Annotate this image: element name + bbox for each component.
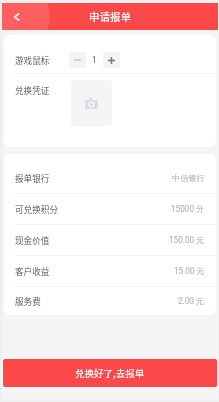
staticText: 150.00 元 [169,235,205,245]
button[interactable]: Decrease quantity [69,52,86,68]
button[interactable]: Increase quantity [103,52,120,68]
staticText: 兑换好了,去报单 [75,366,145,380]
staticText: 服务费 [15,295,41,307]
staticText: 可兑换积分 [15,203,58,215]
staticText: 15.00 元 [174,266,205,276]
staticText: 1 [92,55,97,65]
staticText: 现金价值 [15,234,50,246]
staticText: 兑换凭证 [15,84,50,96]
staticText: 报单银行 [15,172,50,184]
staticText: 2.00 元 [178,296,205,306]
staticText: 申请报单 [89,9,131,24]
staticText: 中信银行 [172,173,205,183]
button[interactable]: Upload voucher photo [71,80,112,126]
button[interactable]: 兑换好了,去报单 [3,359,217,387]
staticText: 游戏鼠标 [15,54,50,66]
staticText: 15000 分 [171,204,205,214]
staticText: 客户收益 [15,265,50,277]
button[interactable]: Back [2,3,30,30]
